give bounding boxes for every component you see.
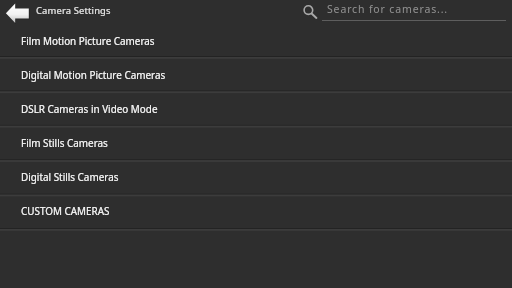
staticText: Film Stills Cameras (21, 136, 108, 149)
button[interactable] (0, 0, 32, 22)
staticText: Camera Settings (36, 4, 111, 17)
button[interactable]: Search for cameras... (294, 0, 512, 22)
staticText: Digital Motion Picture Cameras (21, 68, 166, 81)
button[interactable]: Film Stills Cameras (0, 124, 512, 158)
button[interactable]: Digital Stills Cameras (0, 158, 512, 192)
button[interactable]: CUSTOM CAMERAS (0, 192, 512, 226)
button[interactable]: DSLR Cameras in Video Mode (0, 90, 512, 124)
staticText: Search for cameras... (327, 2, 449, 16)
button[interactable]: Film Motion Picture Cameras (0, 22, 512, 56)
staticText: DSLR Cameras in Video Mode (21, 102, 158, 115)
staticText: CUSTOM CAMERAS (21, 204, 110, 217)
button[interactable]: Digital Motion Picture Cameras (0, 56, 512, 90)
staticText: Digital Stills Cameras (21, 170, 119, 183)
staticText: Film Motion Picture Cameras (21, 34, 155, 47)
